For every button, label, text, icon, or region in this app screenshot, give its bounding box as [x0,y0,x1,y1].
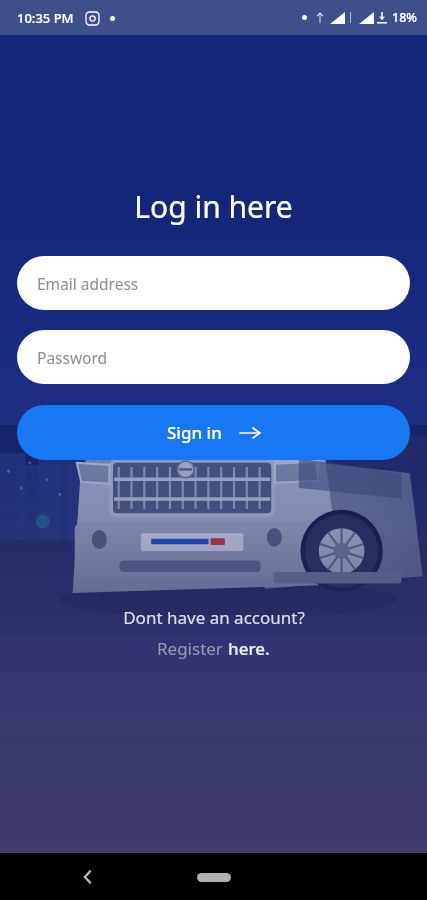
button[interactable]: Back [68,857,108,897]
staticText: here. [228,637,270,660]
staticText: 10:35 PM [17,9,74,27]
staticText: Password [37,347,108,368]
staticText: Email address [37,273,139,294]
staticText: Dont have an account? [123,606,305,629]
button[interactable]: Sign in [17,405,410,460]
button[interactable]: Email address [17,256,410,310]
staticText: Log in here [134,186,293,227]
button[interactable]: Register [157,637,270,660]
staticText: Register [157,637,228,660]
button[interactable]: Password [17,330,410,384]
button[interactable]: Home [186,866,242,888]
staticText: 18% [392,9,417,26]
staticText: Sign in [167,421,222,444]
